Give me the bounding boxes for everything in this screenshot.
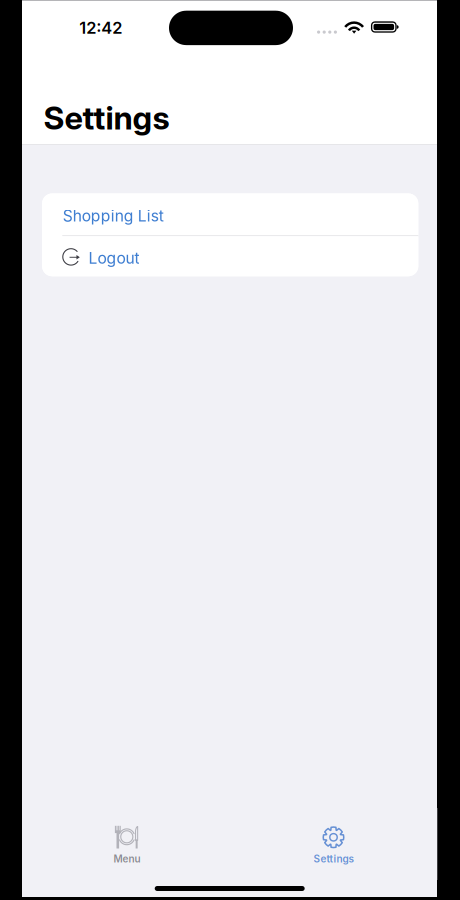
staticText: 12:42: [79, 18, 122, 38]
staticText: Settings: [313, 853, 353, 865]
staticText: Menu: [113, 853, 140, 865]
staticText: Settings: [44, 98, 170, 137]
staticText: Shopping List: [63, 206, 164, 225]
button[interactable]: Logout: [42, 236, 418, 276]
button[interactable]: Settings: [230, 808, 437, 880]
button[interactable]: Menu: [23, 808, 231, 880]
staticText: Logout: [88, 248, 139, 267]
button[interactable]: Shopping List: [42, 193, 418, 235]
